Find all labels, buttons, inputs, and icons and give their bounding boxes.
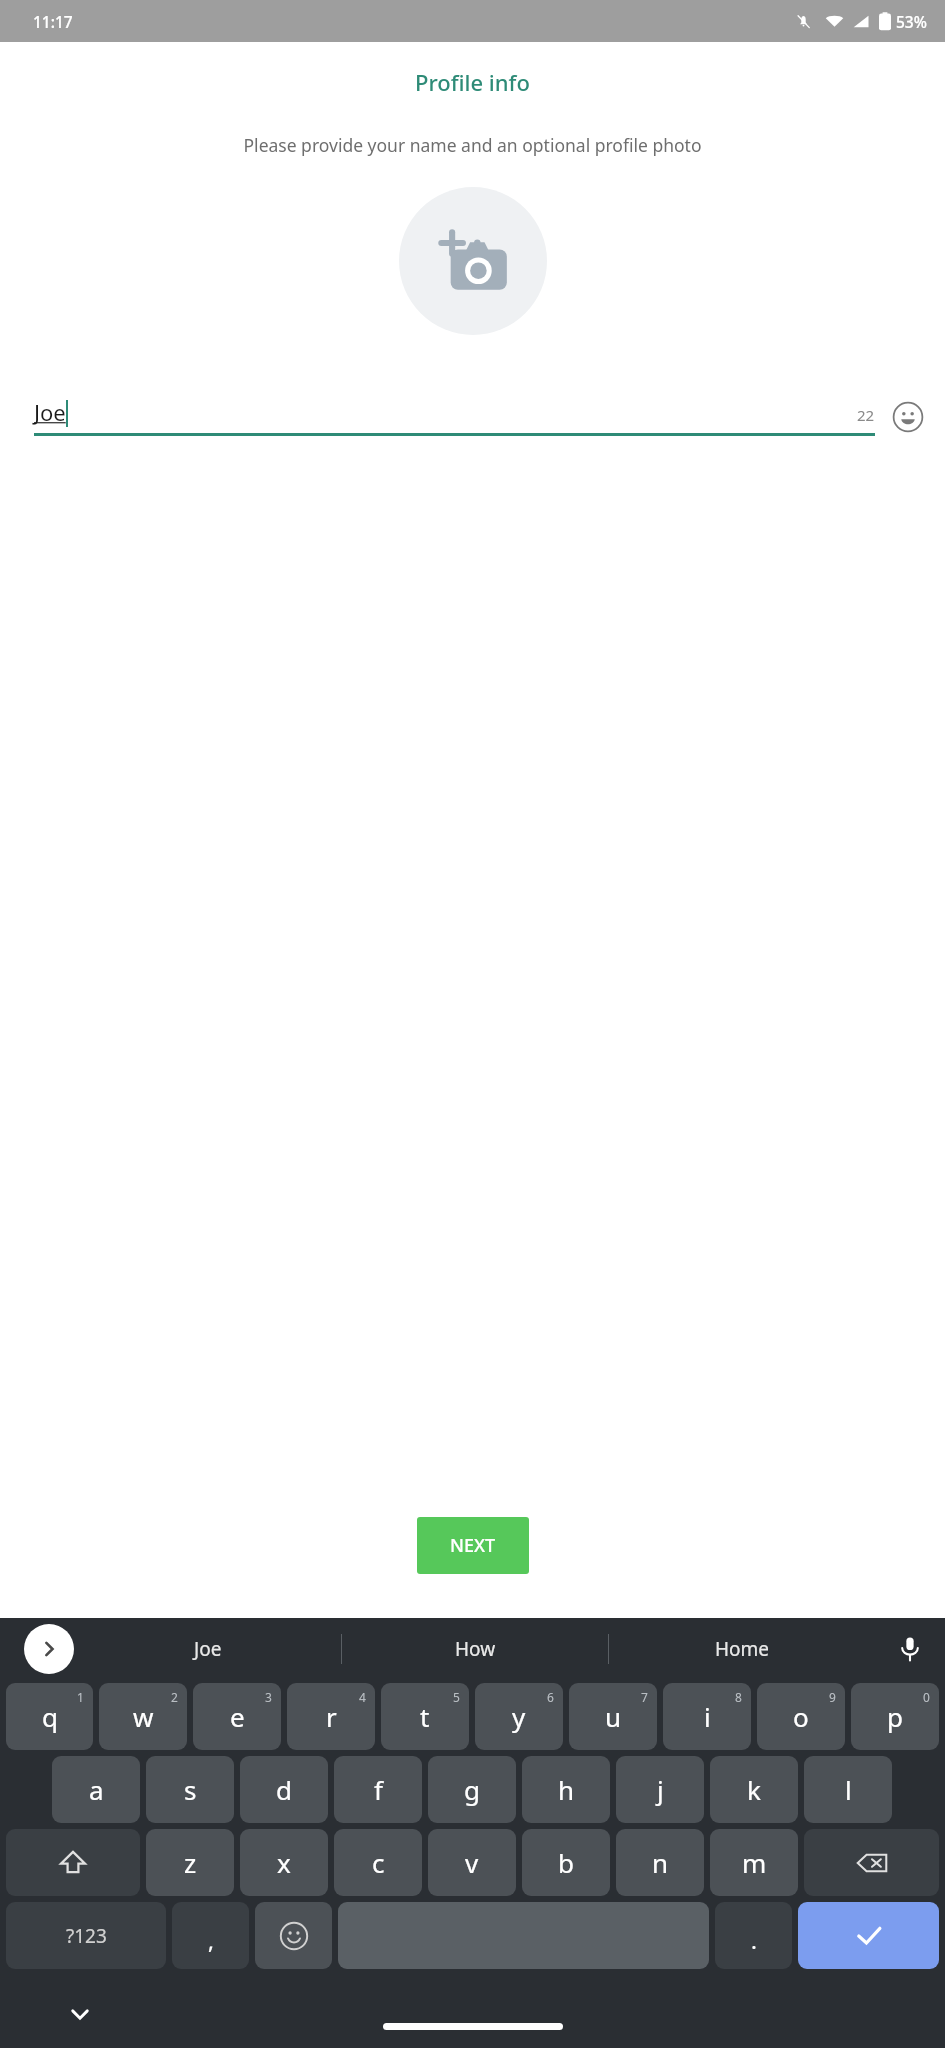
button[interactable]: h [522,1756,610,1823]
button[interactable]: w [99,1683,187,1750]
button[interactable]: q [6,1683,93,1750]
staticText: v [465,1845,479,1880]
button[interactable]: t [381,1683,469,1750]
button[interactable]: r [287,1683,375,1750]
button[interactable]: x [240,1829,328,1896]
staticText: 0 [923,1689,930,1705]
button[interactable]: , [172,1902,249,1969]
button[interactable]: f [334,1756,422,1823]
staticText: h [558,1772,575,1807]
button[interactable]: k [710,1756,798,1823]
staticText: q [42,1699,58,1734]
staticText: 53% [896,11,927,32]
button[interactable]: Home [609,1618,875,1680]
staticText: 9 [829,1689,836,1705]
button[interactable]: Shift [6,1829,140,1896]
staticText: d [276,1772,292,1807]
button[interactable]: . [715,1902,792,1969]
staticText: n [652,1845,669,1880]
staticText: u [605,1699,622,1734]
staticText: . [751,1925,757,1955]
staticText: c [372,1845,385,1880]
staticText: e [230,1699,245,1734]
button[interactable]: i [663,1683,751,1750]
button[interactable]: Add profile photo [399,187,547,335]
button[interactable]: Hide keyboard [60,1994,100,2034]
button[interactable]: l [804,1756,892,1823]
staticText: w [133,1699,154,1734]
staticText: f [374,1772,383,1807]
staticText: 4 [359,1689,366,1705]
button[interactable]: Joe [74,1618,341,1680]
staticText: 8 [735,1689,742,1705]
button[interactable]: e [193,1683,281,1750]
staticText: k [747,1772,761,1807]
button[interactable]: Emoji [891,400,925,434]
button[interactable]: Backspace [804,1829,939,1896]
button[interactable]: NEXT [417,1517,529,1574]
button[interactable]: o [757,1683,845,1750]
staticText: i [704,1699,711,1734]
staticText: r [326,1699,337,1734]
staticText: a [89,1772,104,1807]
staticText: z [184,1845,197,1880]
button[interactable]: p [851,1683,939,1750]
button[interactable]: b [522,1829,610,1896]
button[interactable]: Voice input [875,1618,945,1680]
staticText: o [793,1699,809,1734]
staticText: ?123 [66,1923,107,1949]
staticText: 6 [547,1689,554,1705]
staticText: , [208,1925,214,1955]
staticText: 11:17 [33,11,73,32]
staticText: 1 [77,1689,84,1705]
staticText: Profile info [415,67,530,97]
button[interactable]: d [240,1756,328,1823]
staticText: x [277,1845,291,1880]
button[interactable]: More suggestions [24,1624,74,1674]
staticText: t [420,1699,430,1734]
button[interactable]: z [146,1829,234,1896]
staticText: Joe [194,1636,222,1662]
staticText: y [512,1699,526,1734]
staticText: 3 [265,1689,272,1705]
button[interactable]: v [428,1829,516,1896]
staticText: 7 [641,1689,648,1705]
button[interactable]: u [569,1683,657,1750]
staticText: m [742,1845,767,1880]
staticText: 22 [857,405,875,425]
button[interactable]: y [475,1683,563,1750]
staticText: 5 [453,1689,460,1705]
button[interactable]: g [428,1756,516,1823]
button[interactable]: a [52,1756,140,1823]
staticText: s [184,1772,197,1807]
staticText: j [657,1772,664,1807]
staticText: Please provide your name and an optional… [12,133,933,157]
button[interactable]: How [342,1618,608,1680]
staticText: Joe [34,397,66,427]
staticText: How [455,1636,496,1662]
staticText: Home [715,1636,770,1662]
button[interactable]: Enter [798,1902,939,1969]
button[interactable]: ?123 [6,1902,166,1969]
button[interactable]: s [146,1756,234,1823]
button[interactable]: c [334,1829,422,1896]
staticText: NEXT [450,1533,496,1558]
staticText: p [887,1699,903,1734]
button[interactable]: m [710,1829,798,1896]
staticText: 2 [171,1689,178,1705]
button[interactable]: Emoji keyboard [255,1902,332,1969]
staticText: g [464,1772,480,1807]
staticText: b [558,1845,574,1880]
staticText: l [845,1772,852,1807]
button[interactable]: n [616,1829,704,1896]
button[interactable]: j [616,1756,704,1823]
